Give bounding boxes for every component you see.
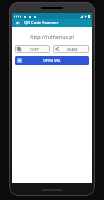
button[interactable]: Back	[15, 20, 21, 26]
staticText: OPEN URL	[43, 58, 61, 63]
staticText: SHARE	[67, 47, 78, 52]
staticText: COPY	[30, 47, 39, 52]
button[interactable]: COPY	[15, 45, 50, 53]
button[interactable]: OPEN URL	[15, 56, 89, 65]
button[interactable]: SHARE	[53, 45, 89, 53]
staticText: QR Code Scanner	[24, 20, 59, 26]
staticText: http://ruthenus.pl	[30, 33, 74, 40]
